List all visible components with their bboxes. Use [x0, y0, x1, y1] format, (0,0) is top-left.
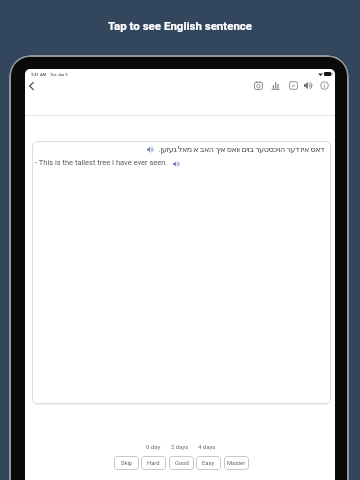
button[interactable] [320, 81, 329, 90]
button[interactable]: Skip [114, 456, 139, 470]
button[interactable] [271, 81, 280, 90]
staticText: 4 days [198, 443, 216, 450]
staticText: 2 days [171, 443, 189, 450]
staticText: Skip [121, 460, 133, 467]
staticText: דאס איז דער הויכסטער בוים וואס איך האב א… [158, 145, 324, 154]
button[interactable]: Master [224, 456, 249, 470]
staticText: Easy [202, 460, 215, 467]
button[interactable] [304, 81, 313, 90]
staticText: Hard [147, 460, 160, 467]
staticText: Master [227, 460, 246, 467]
button[interactable] [254, 81, 263, 90]
button[interactable]: דאס איז דער הויכסטער בוים וואס איך האב א… [32, 141, 331, 404]
button[interactable]: Good [169, 456, 194, 470]
button[interactable] [147, 146, 154, 153]
staticText: 0 day [146, 443, 161, 450]
button[interactable]: Easy [196, 456, 221, 470]
button[interactable] [29, 82, 34, 90]
staticText: 9:41 AM Tue Jan 9 [31, 72, 68, 77]
button[interactable]: Hard [141, 456, 166, 470]
button[interactable] [173, 161, 180, 167]
staticText: Good [175, 460, 189, 467]
button[interactable] [289, 81, 298, 90]
staticText: - This is the tallest tree I have ever s… [35, 158, 168, 167]
staticText: Tap to see English sentence [0, 19, 360, 32]
